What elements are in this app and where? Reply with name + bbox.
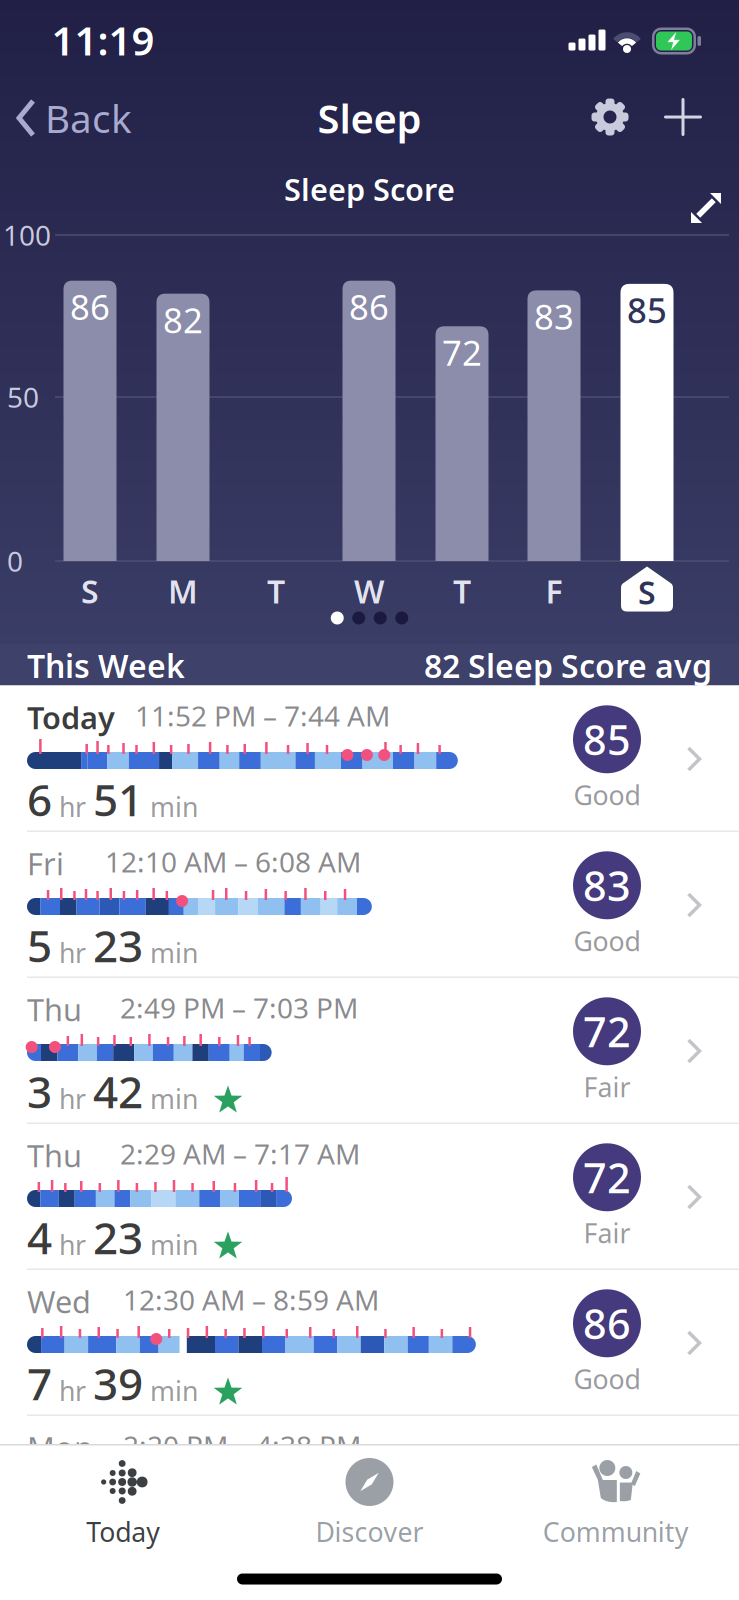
- staticText: Community: [543, 1514, 689, 1549]
- staticText: 50: [7, 378, 39, 416]
- staticText: 5: [27, 916, 52, 974]
- button[interactable]: S: [81, 570, 99, 612]
- staticText: hr: [59, 935, 86, 970]
- staticText: hr: [59, 1227, 86, 1262]
- staticText: Mon: [27, 1427, 93, 1468]
- button[interactable]: Community: [493, 1444, 739, 1549]
- staticText: Thu: [27, 989, 82, 1030]
- button[interactable]: W: [354, 570, 384, 612]
- staticText: 72: [442, 329, 482, 375]
- button[interactable]: [342, 281, 395, 561]
- button[interactable]: Today: [0, 686, 739, 832]
- button[interactable]: Back: [16, 92, 132, 144]
- staticText: 86: [70, 284, 110, 330]
- button[interactable]: [63, 281, 116, 561]
- staticText: 12:30 AM – 8:59 AM: [123, 1281, 379, 1318]
- button[interactable]: [527, 290, 580, 561]
- button[interactable]: M: [168, 570, 198, 612]
- button[interactable]: Wed: [0, 1270, 739, 1416]
- staticText: 51: [93, 770, 143, 828]
- staticText: Good: [573, 1361, 640, 1397]
- staticText: S: [638, 571, 656, 613]
- staticText: 85: [583, 712, 631, 767]
- button[interactable]: [620, 284, 673, 561]
- staticText: Today: [27, 697, 115, 738]
- button[interactable]: [663, 97, 703, 137]
- staticText: M: [168, 570, 198, 612]
- staticText: 2:20 PM – 4:38 PM: [123, 1427, 361, 1464]
- staticText: Fri: [27, 843, 64, 884]
- staticText: Good: [573, 923, 640, 959]
- staticText: 86: [349, 284, 389, 330]
- staticText: Sleep: [317, 91, 421, 144]
- staticText: Fair: [583, 1069, 630, 1105]
- staticText: 7: [27, 1354, 52, 1412]
- staticText: 3: [27, 1062, 52, 1120]
- staticText: 83: [534, 293, 574, 339]
- staticText: 23: [93, 1208, 143, 1266]
- button[interactable]: [590, 97, 630, 137]
- staticText: 2:49 PM – 7:03 PM: [120, 989, 358, 1026]
- staticText: Back: [45, 92, 132, 144]
- button[interactable]: [689, 191, 723, 225]
- staticText: 72: [583, 1004, 631, 1059]
- button[interactable]: Thu: [0, 978, 739, 1124]
- staticText: 42: [93, 1062, 143, 1120]
- staticText: 82 Sleep Score avg: [424, 644, 712, 687]
- button[interactable]: [156, 294, 209, 561]
- button[interactable]: Fri: [0, 832, 739, 978]
- button[interactable]: T: [453, 570, 471, 612]
- button[interactable]: F: [545, 570, 562, 612]
- staticText: 85: [627, 287, 667, 333]
- staticText: min: [150, 1227, 198, 1262]
- staticText: Today: [86, 1514, 160, 1549]
- staticText: 82: [163, 297, 203, 343]
- staticText: min: [150, 1081, 198, 1116]
- button[interactable]: T: [267, 570, 285, 612]
- staticText: Wed: [27, 1281, 91, 1322]
- button[interactable]: Today: [0, 1444, 246, 1549]
- button[interactable]: [435, 326, 488, 561]
- staticText: 86: [583, 1296, 631, 1351]
- staticText: T: [453, 570, 471, 612]
- staticText: This Week: [27, 644, 185, 687]
- staticText: 100: [3, 216, 51, 254]
- staticText: 23: [93, 916, 143, 974]
- staticText: Good: [573, 777, 640, 813]
- staticText: Thu: [27, 1135, 82, 1176]
- button[interactable]: S: [621, 566, 673, 611]
- staticText: min: [150, 935, 198, 970]
- button[interactable]: Discover: [246, 1444, 493, 1549]
- staticText: 11:52 PM – 7:44 AM: [135, 697, 390, 734]
- staticText: 11:19: [51, 13, 154, 66]
- staticText: 72: [583, 1150, 631, 1205]
- staticText: T: [267, 570, 285, 612]
- staticText: 0: [7, 542, 23, 580]
- staticText: W: [354, 570, 384, 612]
- button[interactable]: Thu: [0, 1124, 739, 1270]
- staticText: S: [81, 570, 99, 612]
- staticText: 83: [583, 858, 631, 913]
- staticText: Fair: [583, 1215, 630, 1251]
- staticText: Sleep Score: [284, 169, 455, 209]
- staticText: 6: [27, 770, 52, 828]
- staticText: hr: [59, 1081, 86, 1116]
- staticText: min: [150, 1373, 198, 1408]
- staticText: 12:10 AM – 6:08 AM: [105, 843, 361, 880]
- staticText: F: [545, 570, 562, 612]
- staticText: hr: [59, 1373, 86, 1408]
- staticText: hr: [59, 789, 86, 824]
- staticText: 39: [93, 1354, 143, 1412]
- staticText: min: [150, 789, 198, 824]
- staticText: Discover: [315, 1514, 423, 1549]
- staticText: 4: [27, 1208, 52, 1266]
- staticText: 2:29 AM – 7:17 AM: [120, 1135, 360, 1172]
